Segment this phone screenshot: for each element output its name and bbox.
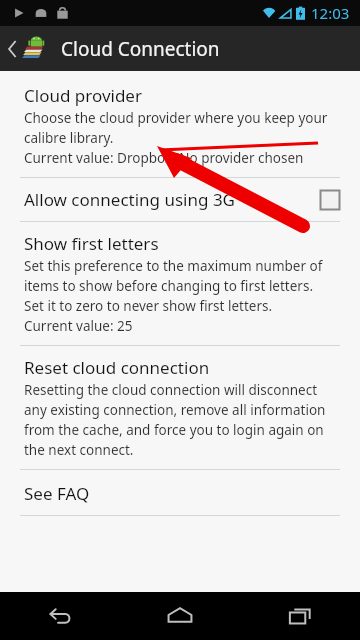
staticText: Reset cloud connection <box>24 356 210 379</box>
staticText: the next connect. <box>24 441 134 459</box>
staticText: calibre library. <box>24 129 114 147</box>
staticText: Set this preference to the maximum numbe… <box>24 257 323 275</box>
button[interactable]: Recent apps <box>240 592 360 640</box>
staticText: Cloud provider <box>24 84 142 107</box>
staticText: items to show before changing to first l… <box>24 277 314 295</box>
other: Allow connecting using 3G checkbox <box>320 190 340 210</box>
button[interactable]: Home <box>120 592 240 640</box>
staticText: Show first letters <box>24 232 159 255</box>
staticText: Set it to zero to never show first lette… <box>24 297 273 315</box>
button[interactable]: Cloud provider <box>0 71 360 177</box>
staticText: Current value: Dropbox, No provider chos… <box>24 149 304 167</box>
button[interactable]: Show first letters <box>0 222 360 345</box>
staticText: Choose the cloud provider where you keep… <box>24 109 328 127</box>
button[interactable]: See FAQ <box>0 470 360 515</box>
staticText: Cloud Connection <box>61 36 220 62</box>
button[interactable]: Back <box>0 592 120 640</box>
button[interactable]: Allow connecting using 3G <box>0 178 360 221</box>
staticText: any existing connection, remove all info… <box>24 401 326 419</box>
staticText: Resetting the cloud connection will disc… <box>24 381 318 399</box>
staticText: 12:03 <box>311 3 350 23</box>
staticText: Current value: 25 <box>24 317 133 335</box>
button[interactable]: Reset cloud connection <box>0 346 360 469</box>
staticText: from the cache, and force you to login a… <box>24 421 324 439</box>
staticText: Allow connecting using 3G <box>24 188 235 211</box>
staticText: See FAQ <box>24 482 90 505</box>
button[interactable]: Navigate up <box>0 31 53 67</box>
